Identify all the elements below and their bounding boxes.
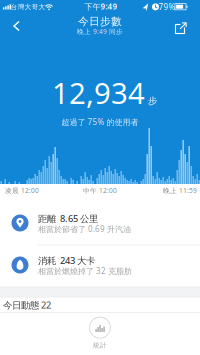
staticText: 晚上 9:49 同步 [77,27,123,36]
staticText: 今日步數 [78,15,122,28]
staticText: 消耗 243 大卡 [38,254,95,267]
staticText: 今日動態 22 [3,299,51,311]
button[interactable]: Share [173,20,188,35]
staticText: 超過了 75% 的使用者 [61,117,138,127]
staticText: 凌晨 12:00 [5,186,39,195]
button[interactable]: Back [0,0,24,24]
staticText: 12,934 [52,73,145,112]
staticText: 下午9:49 [84,1,117,12]
staticText: 步 [148,95,157,106]
staticText: 相當於節省了 0.69 升汽油 [38,224,131,234]
staticText: 中午 12:00 [83,186,117,195]
staticText: 統計 [93,341,107,349]
staticText: 相當於燃燒掉了 32 克脂肪 [38,266,132,276]
staticText: 79% [158,2,175,12]
staticText: 距離 8.65 公里 [38,212,98,225]
staticText: 晚上 11:59 [163,186,197,195]
staticText: 台灣大哥大 [10,3,45,11]
button[interactable]: 統計 [89,317,111,349]
